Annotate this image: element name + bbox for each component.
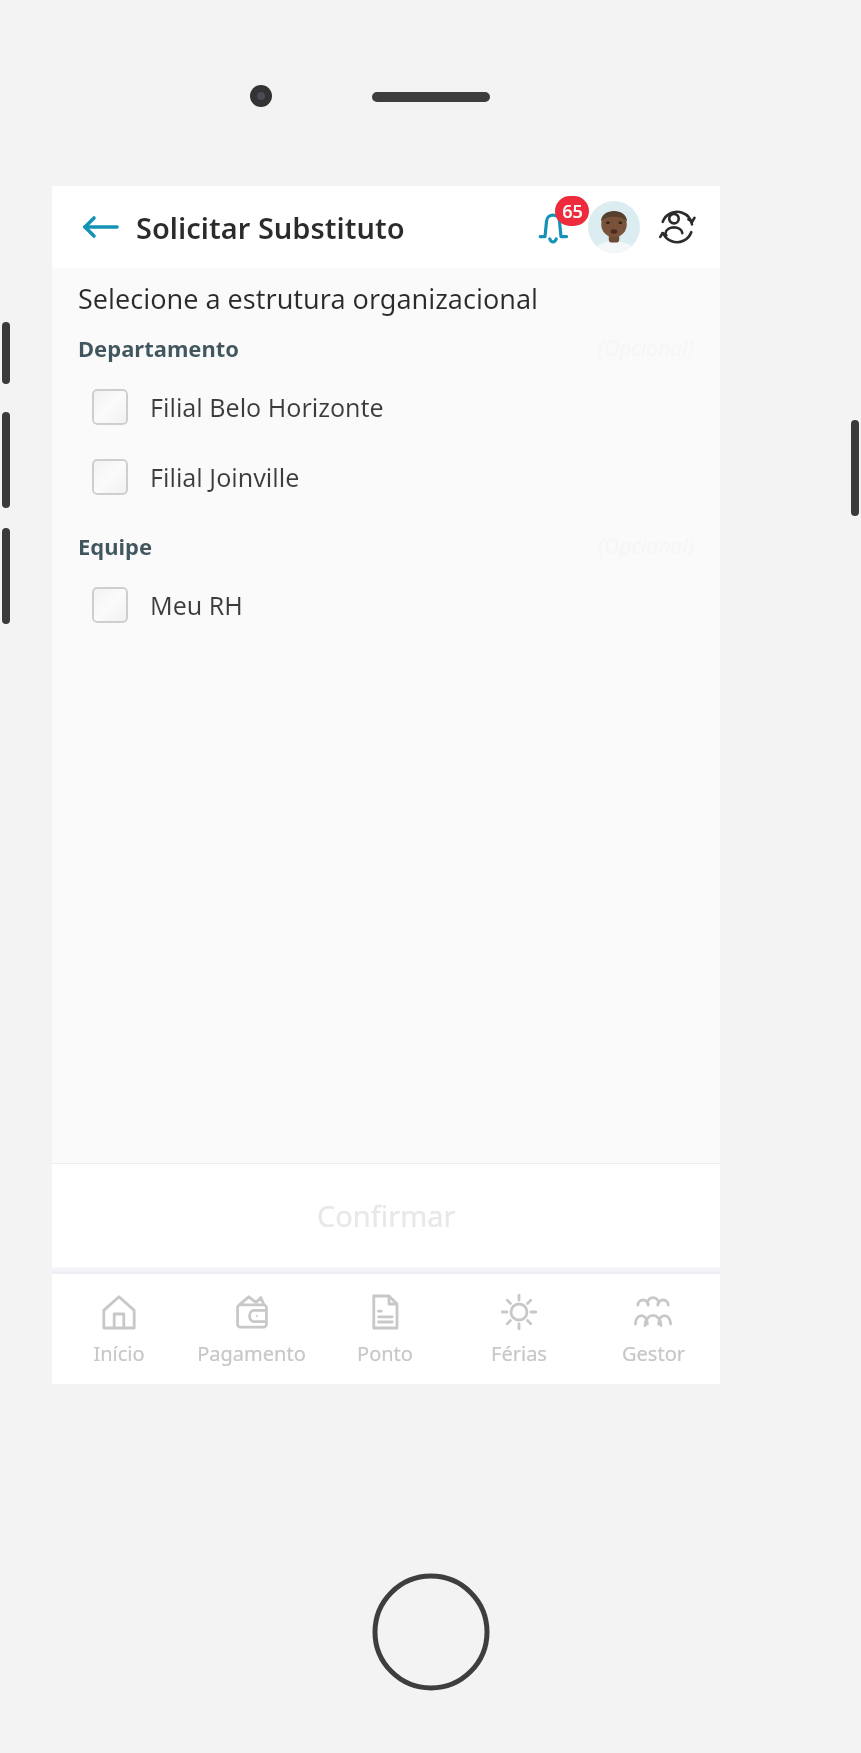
staticText: Gestor [622, 1340, 685, 1367]
staticText: 65 [562, 199, 583, 224]
button[interactable]: Gestor [586, 1274, 720, 1384]
staticText: Departamento [78, 333, 240, 363]
staticText: Equipe [78, 531, 153, 561]
button[interactable]: Notificações [524, 198, 582, 256]
staticText: Férias [491, 1340, 547, 1367]
button[interactable]: Férias [452, 1274, 586, 1384]
button[interactable]: Filial Joinville [52, 449, 720, 505]
staticText: Ponto [357, 1340, 413, 1367]
button[interactable]: Início [52, 1274, 185, 1384]
staticText: Meu RH [150, 588, 243, 622]
button[interactable]: Trocar perfil [652, 202, 702, 252]
staticText: Filial Joinville [150, 460, 300, 494]
button[interactable]: Pagamento [185, 1274, 318, 1384]
staticText: Solicitar Substituto [136, 208, 405, 247]
staticText: Filial Belo Horizonte [150, 390, 384, 424]
staticText: Confirmar [317, 1196, 456, 1235]
button[interactable]: Ponto [318, 1274, 452, 1384]
button[interactable]: Voltar [74, 201, 126, 253]
staticText: Selecione a estrutura organizacional [78, 280, 539, 317]
button[interactable]: Perfil [588, 201, 640, 253]
staticText: Início [93, 1340, 145, 1367]
staticText: Pagamento [197, 1340, 306, 1367]
button[interactable]: Meu RH [52, 577, 720, 633]
button[interactable]: Filial Belo Horizonte [52, 379, 720, 435]
